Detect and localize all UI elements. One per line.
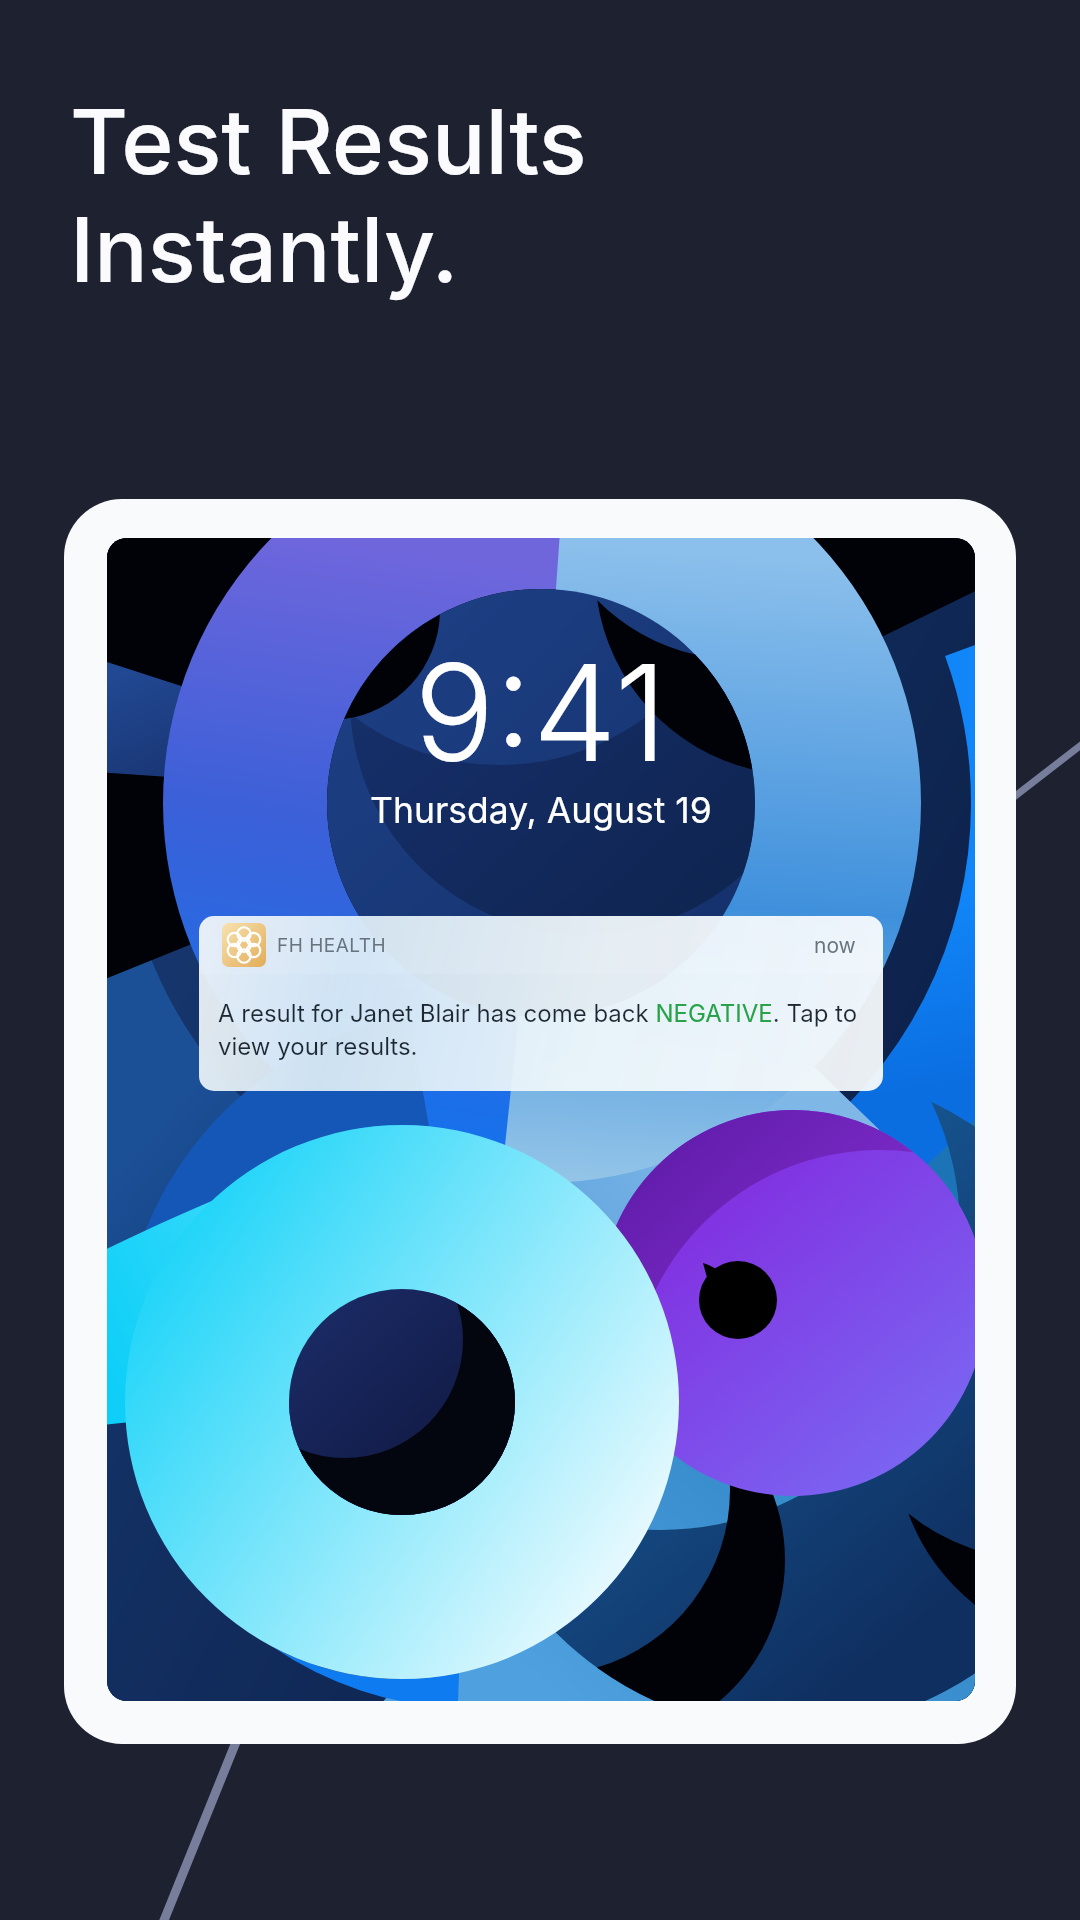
staticText: Thursday, August 19 bbox=[370, 789, 712, 832]
button[interactable]: FH Health notification: tap to view your… bbox=[199, 916, 883, 1091]
other: FH Health app icon bbox=[222, 923, 266, 967]
staticText: now bbox=[814, 933, 856, 958]
staticText: Test Results bbox=[70, 88, 587, 196]
staticText: Instantly. bbox=[70, 196, 459, 304]
staticText: FH HEALTH bbox=[277, 934, 387, 957]
staticText: A result for Janet Blair has come back N… bbox=[218, 999, 883, 1061]
staticText: 9:41 bbox=[414, 631, 668, 793]
